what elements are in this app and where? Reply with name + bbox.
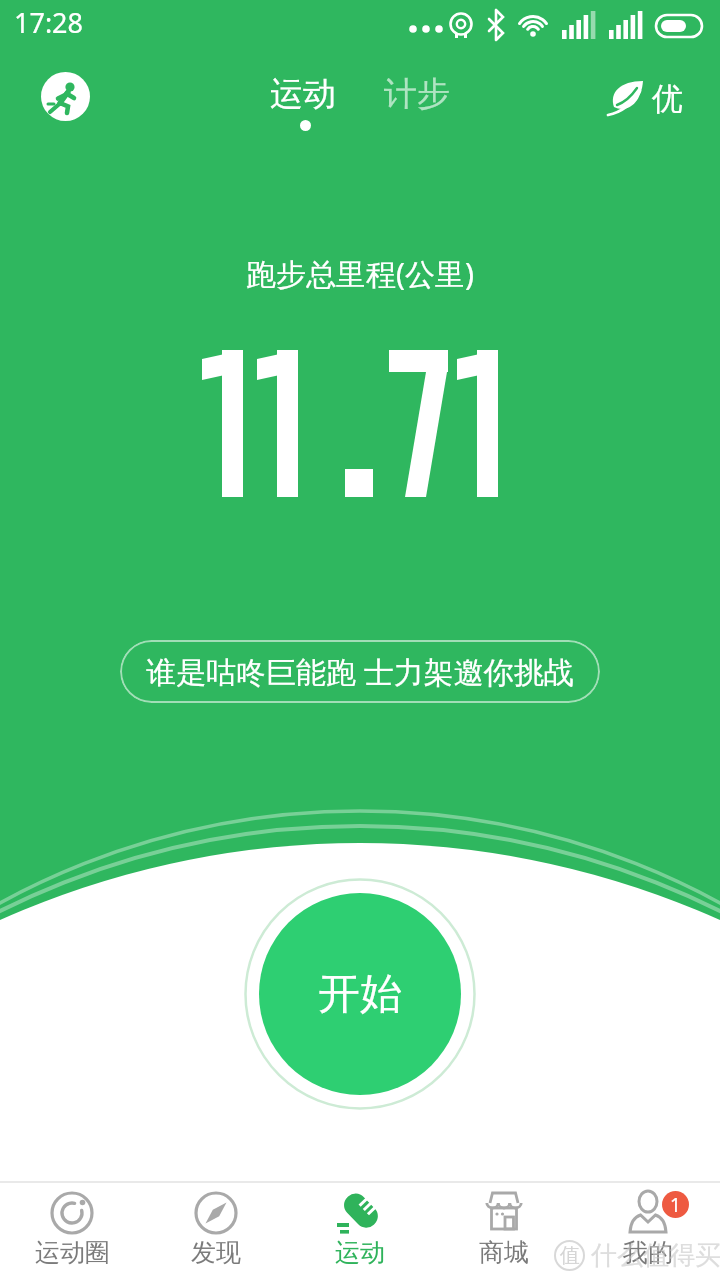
button[interactable]: 我的: [576, 1183, 720, 1280]
staticText: 什么值得买: [591, 1239, 720, 1272]
staticText: 优: [652, 79, 683, 118]
staticText: 1: [670, 1192, 681, 1218]
button[interactable]: 运动: [288, 1183, 432, 1280]
staticText: 运动: [270, 73, 336, 115]
staticText: 我的: [623, 1237, 673, 1268]
button[interactable]: 运动圈: [0, 1183, 144, 1280]
button[interactable]: 运动: [270, 70, 336, 118]
staticText: 计步: [384, 73, 450, 115]
button[interactable]: 开始: [259, 893, 461, 1095]
staticText: 谁是咕咚巨能跑 士力架邀你挑战: [146, 651, 574, 692]
button[interactable]: 优: [608, 74, 683, 122]
staticText: 开始: [318, 968, 402, 1021]
staticText: 运动: [335, 1237, 385, 1268]
button[interactable]: 谁是咕咚巨能跑 士力架邀你挑战: [120, 640, 600, 703]
button[interactable]: 商城: [432, 1183, 576, 1280]
staticText: 商城: [479, 1237, 529, 1268]
staticText: 运动圈: [35, 1237, 110, 1268]
staticText: 发现: [191, 1237, 241, 1268]
button[interactable]: [41, 72, 90, 121]
staticText: 跑步总里程(公里): [246, 253, 474, 294]
button[interactable]: 计步: [384, 70, 450, 118]
staticText: 值: [560, 1243, 580, 1268]
button[interactable]: 发现: [144, 1183, 288, 1280]
staticText: 17:28: [14, 4, 84, 41]
